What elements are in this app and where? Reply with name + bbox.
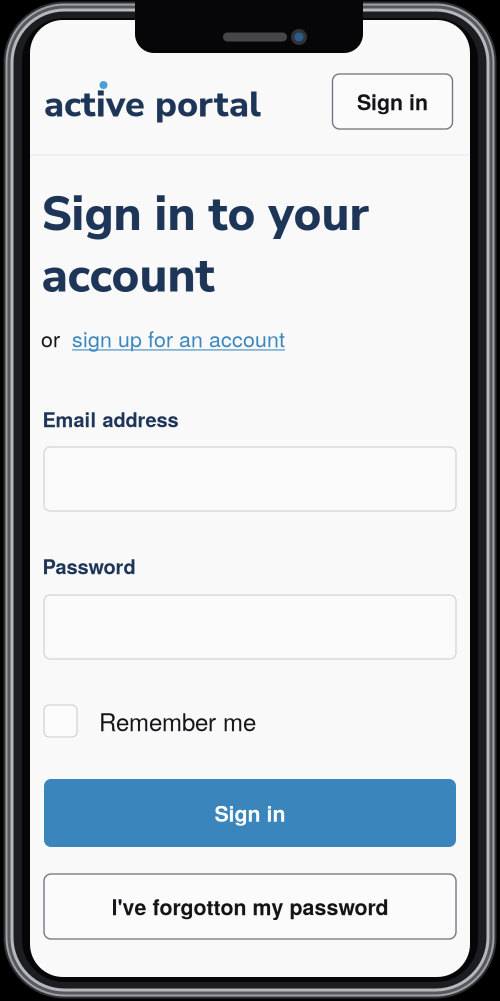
staticText: Remember me bbox=[99, 704, 256, 738]
staticText: Password bbox=[42, 552, 135, 580]
button[interactable]: sign up for an account bbox=[72, 323, 285, 353]
button[interactable]: Sign in bbox=[332, 74, 452, 129]
staticText: Sign in bbox=[214, 798, 285, 828]
button[interactable]: Remember me bbox=[44, 704, 456, 738]
staticText: account bbox=[41, 244, 214, 308]
button[interactable]: Sign in bbox=[44, 779, 456, 847]
staticText: I've forgotton my password bbox=[111, 891, 388, 922]
button[interactable]: I've forgotton my password bbox=[44, 874, 456, 939]
staticText: sign up for an account bbox=[72, 323, 285, 353]
staticText: Sign in to your bbox=[41, 182, 369, 247]
staticText: active portal bbox=[44, 80, 261, 129]
staticText: Email address bbox=[42, 405, 178, 433]
staticText: or bbox=[41, 323, 60, 353]
staticText: Sign in bbox=[357, 86, 428, 117]
